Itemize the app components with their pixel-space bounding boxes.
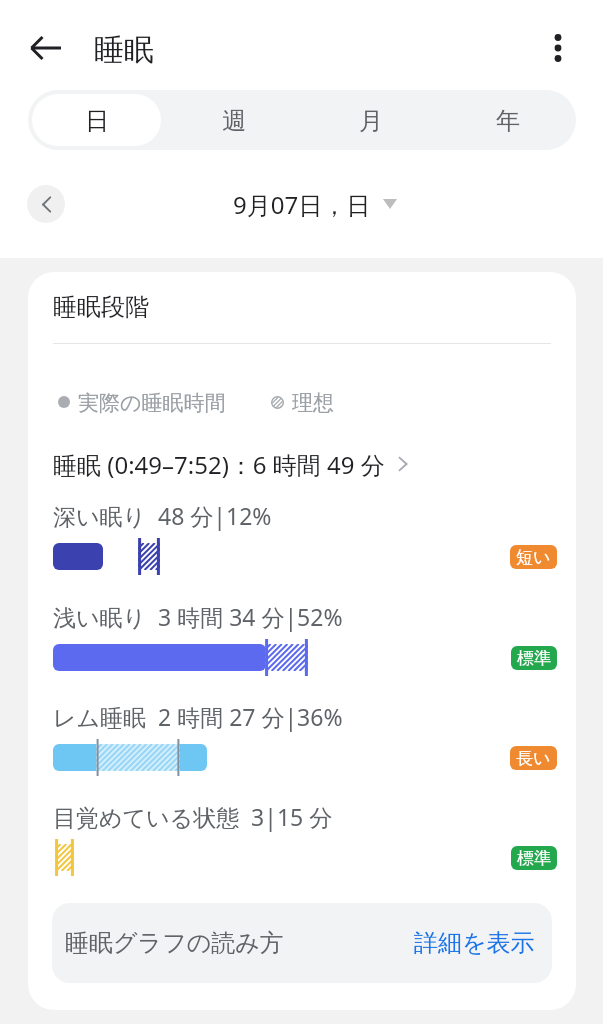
- button[interactable]: More options: [534, 24, 582, 72]
- button[interactable]: 短い: [510, 545, 557, 569]
- staticText: 睡眠: [94, 31, 154, 69]
- staticText: 睡眠 (0:49–7:52)：6 時間 49 分: [53, 448, 385, 481]
- staticText: 浅い眠り 3 時間 34 分|52%: [53, 601, 343, 632]
- staticText: 年: [496, 106, 520, 136]
- staticText: 標準: [517, 848, 551, 869]
- staticText: 理想: [292, 390, 334, 414]
- staticText: 長い: [516, 748, 551, 769]
- button[interactable]: 睡眠グラフの読み方: [52, 903, 552, 983]
- button[interactable]: 標準: [511, 646, 557, 670]
- staticText: 短い: [516, 547, 551, 568]
- staticText: レム睡眠 2 時間 27 分|36%: [53, 701, 343, 732]
- staticText: 目覚めている状態 3|15 分: [53, 801, 333, 832]
- staticText: 標準: [517, 648, 551, 669]
- button[interactable]: 日: [28, 90, 165, 150]
- button[interactable]: 月: [302, 90, 439, 150]
- staticText: 9月07日，日: [233, 188, 371, 221]
- button[interactable]: 睡眠 (0:49–7:52)：6 時間 49 分: [53, 446, 411, 482]
- button[interactable]: 標準: [511, 846, 557, 870]
- button[interactable]: Previous day: [27, 185, 65, 223]
- button[interactable]: 年: [439, 90, 576, 150]
- staticText: 睡眠グラフの読み方: [65, 928, 284, 958]
- staticText: 月: [359, 106, 383, 136]
- staticText: 日: [85, 106, 109, 136]
- button[interactable]: 週: [165, 90, 302, 150]
- staticText: 週: [222, 106, 246, 136]
- staticText: 実際の睡眠時間: [78, 390, 226, 414]
- button[interactable]: Back: [24, 26, 68, 70]
- button[interactable]: 9月07日，日: [223, 182, 381, 227]
- staticText: 睡眠段階: [53, 292, 149, 322]
- staticText: 詳細を表示: [414, 928, 535, 958]
- staticText: 深い眠り 48 分|12%: [53, 500, 272, 531]
- button[interactable]: 長い: [510, 746, 557, 770]
